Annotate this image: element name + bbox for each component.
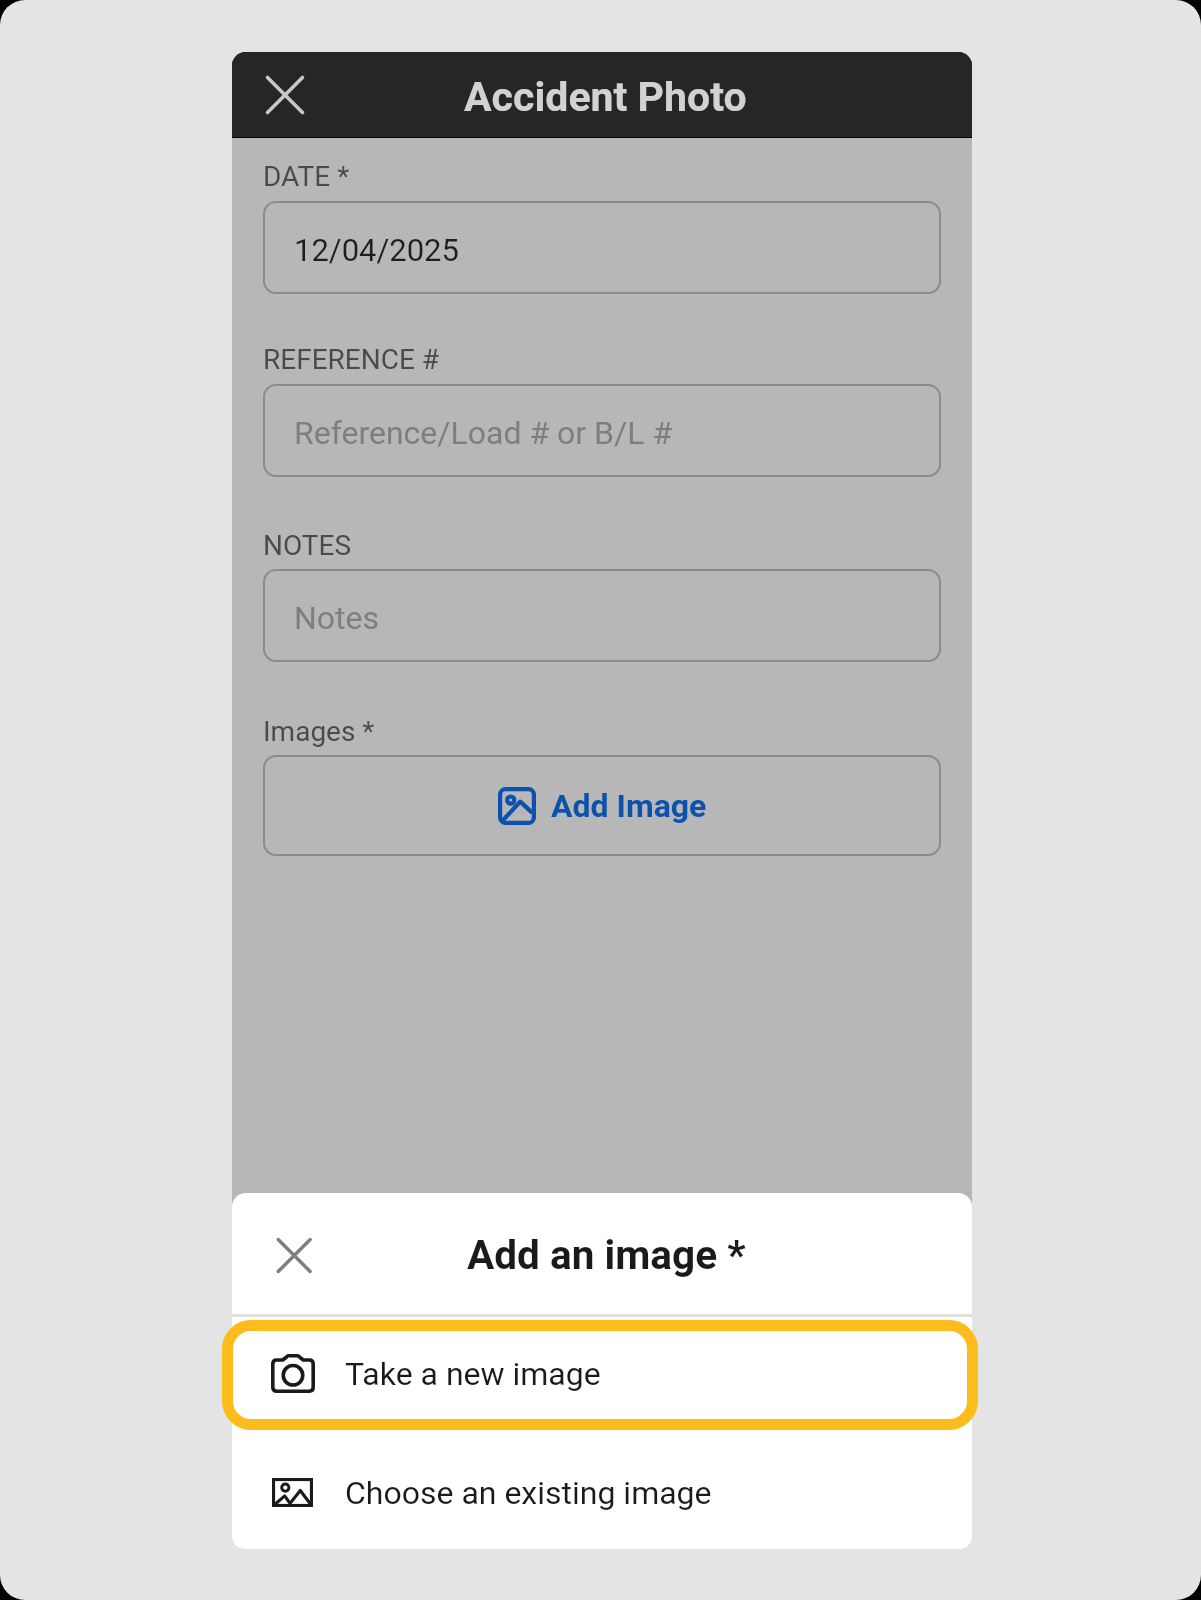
- staticText: Reference/Load # or B/L #: [294, 414, 673, 452]
- staticText: DATE *: [263, 160, 350, 193]
- staticText: Add an image *: [467, 1231, 746, 1278]
- staticText: NOTES: [263, 529, 352, 562]
- button[interactable]: Reference/Load # or B/L #: [263, 384, 941, 477]
- button[interactable]: Add Image: [263, 755, 941, 856]
- staticText: 12/04/2025: [294, 232, 459, 268]
- staticText: Add Image: [551, 787, 707, 825]
- button[interactable]: Close: [266, 1228, 318, 1280]
- button[interactable]: Notes: [263, 569, 941, 662]
- staticText: Notes: [294, 599, 380, 637]
- staticText: Choose an existing image: [345, 1474, 712, 1512]
- staticText: Images *: [263, 715, 375, 748]
- button[interactable]: Close: [259, 69, 311, 121]
- button[interactable]: 12/04/2025: [263, 201, 941, 294]
- staticText: Take a new image: [345, 1355, 601, 1393]
- button[interactable]: Take a new image: [232, 1313, 972, 1432]
- staticText: Accident Photo: [464, 73, 747, 121]
- staticText: REFERENCE #: [263, 343, 440, 376]
- button[interactable]: Choose an existing image: [232, 1432, 972, 1549]
